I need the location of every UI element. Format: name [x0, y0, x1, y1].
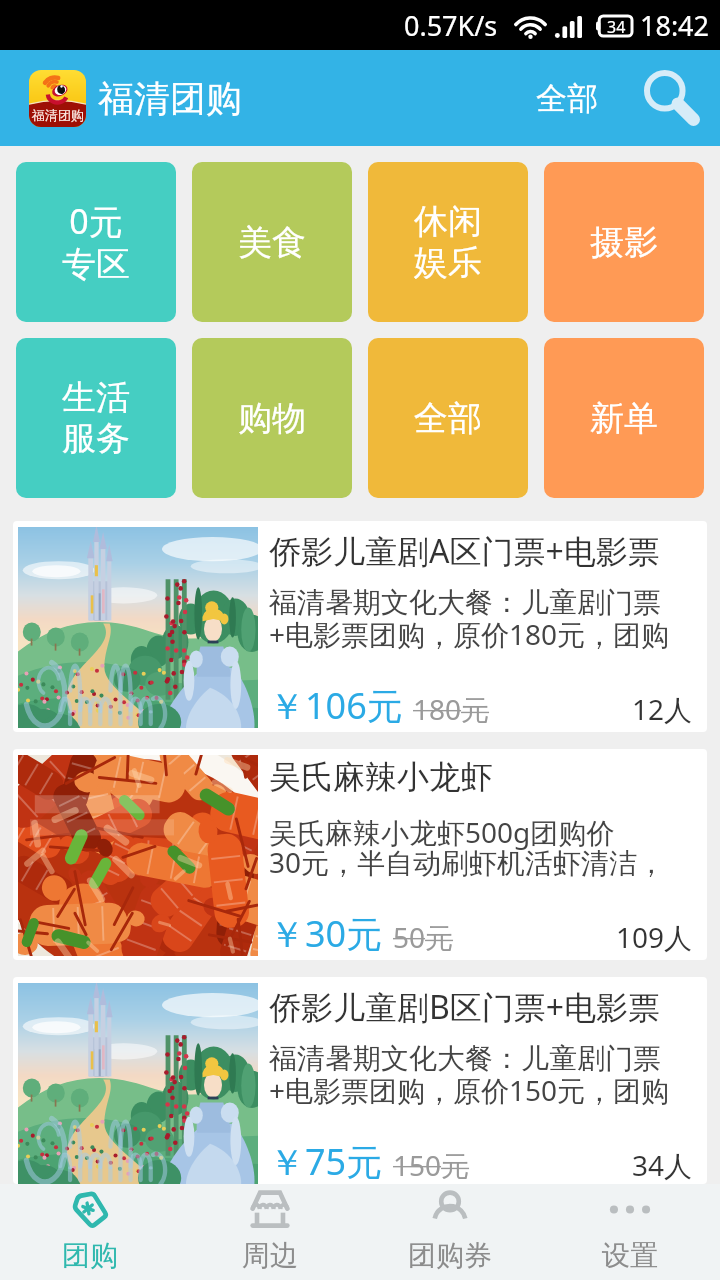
staticText: 150元 — [393, 1146, 470, 1184]
staticText: 周边 — [242, 1238, 298, 1273]
button[interactable]: 0元 专区 — [16, 162, 176, 322]
staticText: 50元 — [393, 918, 454, 956]
button[interactable]: 周边 — [180, 1184, 360, 1280]
staticText: ￥75元 — [269, 1137, 383, 1184]
staticText: 吴氏麻辣小龙虾500g团购价 — [269, 813, 615, 851]
staticText: 0.57K/s — [404, 7, 498, 44]
staticText: 福清暑期文化大餐：儿童剧门票 — [269, 1041, 661, 1076]
button[interactable]: 全部 — [526, 71, 608, 126]
staticText: 30元，半自动刷虾机活虾清洁， — [269, 843, 666, 881]
staticText: ￥106元 — [269, 681, 403, 730]
button[interactable]: 摄影 — [544, 162, 704, 322]
staticText: 福清团购 — [98, 76, 242, 121]
button[interactable]: 购物 — [192, 338, 352, 498]
staticText: +电影票团购，原价150元，团购 — [269, 1071, 670, 1109]
staticText: 18:42 — [640, 7, 710, 44]
button[interactable]: 侨影儿童剧A区门票+电影票 — [13, 521, 707, 732]
staticText: 福清暑期文化大餐：儿童剧门票 — [269, 585, 661, 620]
staticText: 新单 — [590, 397, 658, 440]
button[interactable]: 休闲 娱乐 — [368, 162, 528, 322]
button[interactable]: 侨影儿童剧B区门票+电影票 — [13, 977, 707, 1184]
staticText: 全部 — [536, 79, 598, 118]
button[interactable]: 团购 — [0, 1184, 180, 1280]
staticText: 12人 — [632, 690, 693, 728]
staticText: 购物 — [238, 397, 306, 440]
staticText: 109人 — [616, 918, 693, 956]
staticText: 设置 — [602, 1238, 658, 1273]
staticText: 侨影儿童剧B区门票+电影票 — [269, 985, 661, 1029]
staticText: 侨影儿童剧A区门票+电影票 — [269, 529, 660, 573]
staticText: 34人 — [632, 1146, 693, 1184]
staticText: 180元 — [413, 690, 490, 728]
staticText: 休闲 娱乐 — [414, 200, 482, 284]
staticText: 福清团购 — [32, 107, 84, 123]
button[interactable]: 团购券 — [360, 1184, 540, 1280]
button[interactable]: 设置 — [540, 1184, 720, 1280]
staticText: ￥30元 — [269, 909, 383, 958]
staticText: 全部 — [414, 397, 482, 440]
staticText: 团购 — [62, 1238, 118, 1273]
staticText: 0元 专区 — [62, 198, 130, 286]
button[interactable]: 生活 服务 — [16, 338, 176, 498]
staticText: 摄影 — [590, 221, 658, 264]
button[interactable]: 全部 — [368, 338, 528, 498]
button[interactable]: 新单 — [544, 338, 704, 498]
staticText: 吴氏麻辣小龙虾 — [269, 757, 493, 797]
button[interactable]: 美食 — [192, 162, 352, 322]
button[interactable]: Search — [644, 70, 700, 126]
staticText: 美食 — [238, 221, 306, 264]
staticText: 生活 服务 — [62, 376, 130, 460]
staticText: 34 — [607, 16, 626, 36]
button[interactable]: 吴氏麻辣小龙虾 — [13, 749, 707, 960]
staticText: +电影票团购，原价180元，团购 — [269, 615, 670, 653]
staticText: 团购券 — [408, 1238, 492, 1273]
